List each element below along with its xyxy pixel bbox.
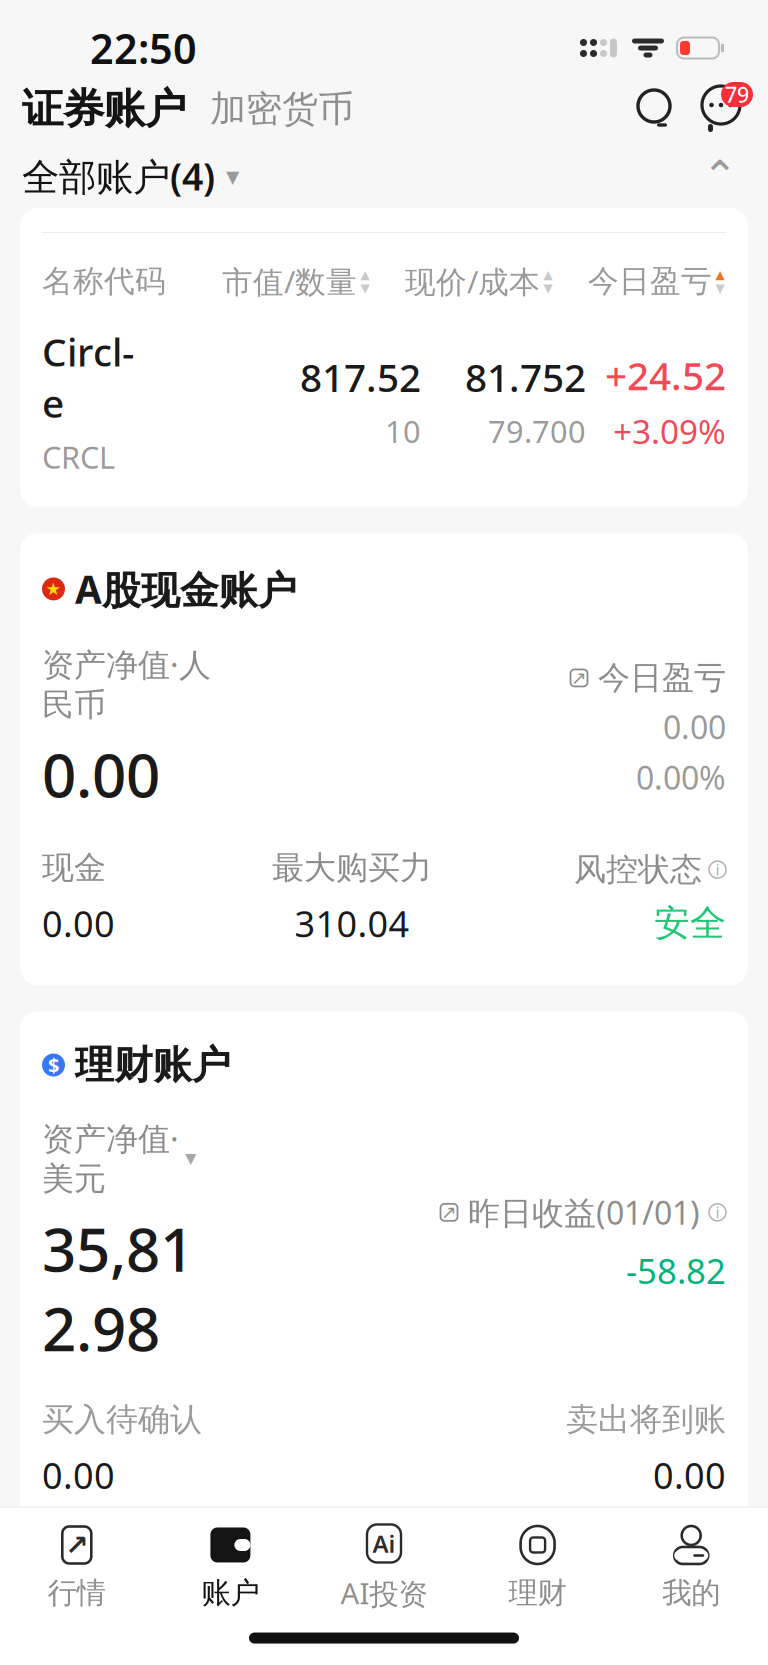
button[interactable]: Collapse accounts <box>694 154 746 198</box>
button[interactable]: 资产净值·美元 <box>42 1117 219 1199</box>
button[interactable]: 全部账户(4) <box>22 151 239 201</box>
staticText: 安全 <box>654 901 726 945</box>
staticText: 昨日收益 <box>588 1556 712 1594</box>
staticText: 今日盈亏 <box>588 262 712 300</box>
staticText: $ <box>48 1052 59 1078</box>
staticText: Ai <box>372 1527 395 1559</box>
staticText: 817.52 <box>300 351 421 403</box>
button[interactable]: T 3.500% 31Jan2030... <box>20 1594 748 1665</box>
staticText: 0.00 <box>42 1451 115 1499</box>
staticText: ⌃ <box>702 152 738 200</box>
staticText: 现金 <box>42 848 106 887</box>
staticText: 22:50 <box>90 21 197 75</box>
staticText: 全部账户(4) <box>22 151 215 201</box>
staticText: 0.00 <box>42 899 115 947</box>
staticText: 市值/数量 <box>222 261 357 302</box>
staticText: 持有金额 <box>360 1556 484 1594</box>
staticText: ▼ <box>715 281 724 295</box>
staticText: 风控状态 <box>574 850 702 889</box>
staticText: 79 <box>725 80 749 109</box>
staticText: -58.82 <box>626 1248 726 1294</box>
staticText: 0.00 <box>653 1451 726 1499</box>
staticText: 310.04 <box>294 899 409 947</box>
staticText: 名称代码 <box>42 262 166 300</box>
staticText: ▾ <box>226 161 239 191</box>
button[interactable]: Search <box>626 88 682 130</box>
staticText: 81.752 <box>465 351 586 403</box>
button[interactable]: 账户 <box>154 1509 307 1623</box>
staticText: 35,812.98 <box>42 1209 194 1368</box>
staticText: 名称代码 <box>42 1556 166 1594</box>
staticText: 我的 <box>662 1575 720 1611</box>
staticText: ▲ <box>543 268 552 281</box>
staticText: 10 <box>385 411 421 451</box>
staticText: 理财 <box>509 1575 567 1611</box>
staticText: 账户 <box>201 1575 259 1611</box>
button[interactable]: 理财 <box>461 1509 614 1623</box>
staticText: ▼ <box>715 1575 724 1588</box>
button[interactable]: Ai <box>307 1507 461 1624</box>
staticText: AI投资 <box>340 1573 427 1612</box>
staticText: 资产净值·美元 <box>42 1117 179 1199</box>
staticText: 现价/成本 <box>405 261 540 302</box>
button[interactable]: ★ <box>20 533 748 615</box>
staticText: ↗ <box>65 1529 88 1561</box>
staticText: 今日盈亏 <box>598 658 726 698</box>
staticText: 证券账户 <box>22 84 186 134</box>
button[interactable]: 证券账户 <box>22 84 186 134</box>
button[interactable]: $ <box>20 1011 748 1089</box>
staticText: 卖出将到账 <box>566 1400 726 1439</box>
staticText: ↗ <box>571 667 587 688</box>
staticText: Circle <box>42 326 134 428</box>
staticText: 行情 <box>48 1575 106 1611</box>
staticText: 买入待确认 <box>42 1400 202 1439</box>
staticText: ★ <box>45 579 61 599</box>
staticText: ▲ <box>715 268 724 281</box>
staticText: 理财账户 <box>75 1041 231 1089</box>
staticText: 资产净值·人民币 <box>42 643 211 724</box>
button[interactable]: ↗ <box>0 1509 154 1623</box>
staticText: 0.00 <box>663 706 726 748</box>
staticText: 0.00 <box>42 734 160 814</box>
button[interactable]: 加密货币 <box>186 87 354 131</box>
staticText: A股现金账户 <box>75 563 297 615</box>
staticText: 0.00% <box>636 756 726 799</box>
staticText: ▼ <box>543 281 552 295</box>
staticText: 最大购买力 <box>272 848 432 887</box>
staticText: ▼ <box>360 281 369 295</box>
staticText: CRCL <box>42 436 115 477</box>
staticText: i <box>715 1202 719 1223</box>
button[interactable]: 我的 <box>614 1509 768 1623</box>
staticText: ▲ <box>360 268 369 281</box>
staticText: ↗ <box>441 1202 457 1223</box>
staticText: i <box>715 859 719 880</box>
staticText: +3.09% <box>613 409 726 453</box>
button[interactable]: Messages, 79 unread <box>682 86 742 132</box>
button[interactable]: Circle <box>20 302 748 507</box>
staticText: 79.700 <box>488 411 586 451</box>
staticText: 加密货币 <box>210 87 354 131</box>
button[interactable]: ↗ <box>466 658 726 698</box>
staticText: ▾ <box>185 1145 196 1170</box>
button[interactable]: ↗ <box>396 1191 726 1234</box>
staticText: 昨日收益(01/01) <box>468 1191 700 1234</box>
staticText: +24.52 <box>605 350 726 401</box>
